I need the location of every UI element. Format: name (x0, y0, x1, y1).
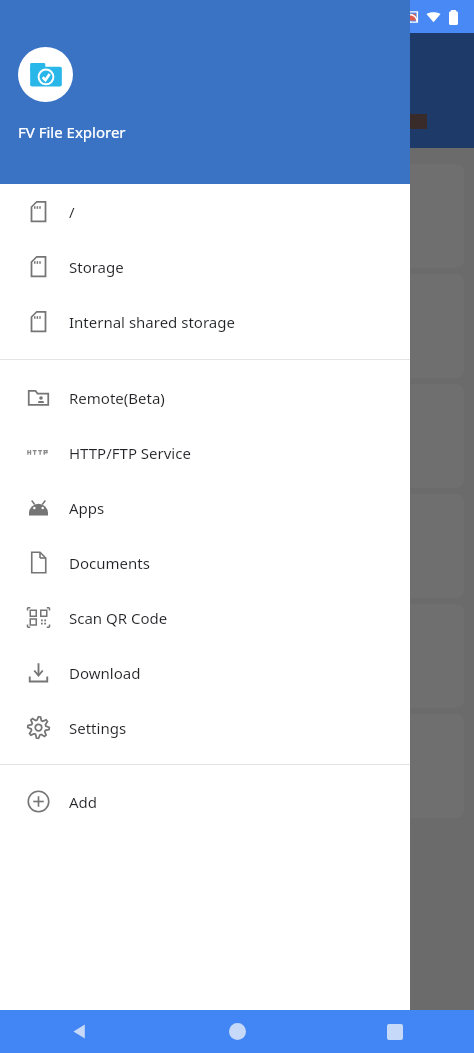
button[interactable]: Settings (0, 700, 410, 755)
staticText: Remote(Beta) (69, 388, 165, 408)
staticText: Storage (69, 257, 124, 277)
staticText: Add (69, 792, 98, 812)
staticText: / (69, 202, 75, 222)
staticText: Scan QR Code (69, 608, 168, 628)
button[interactable]: Remote(Beta) (0, 370, 410, 425)
staticText: Documents (69, 553, 150, 573)
staticText: Internal shared storage (69, 312, 235, 332)
button[interactable]: Storage (0, 239, 410, 294)
staticText: Settings (69, 718, 127, 738)
staticText: FV File Explorer (18, 122, 126, 142)
staticText: Download (69, 663, 141, 683)
button[interactable]: / (0, 184, 410, 239)
button[interactable]: Scan QR Code (0, 590, 410, 645)
button[interactable]: Back (0, 1010, 158, 1053)
staticText: Apps (69, 498, 105, 518)
button[interactable]: Add (0, 774, 410, 829)
button[interactable]: Home (158, 1010, 316, 1053)
button[interactable]: Documents (0, 535, 410, 590)
button[interactable]: Apps (0, 480, 410, 535)
button[interactable]: HTTP/FTP Service (0, 425, 410, 480)
button[interactable]: Download (0, 645, 410, 700)
staticText: HTTP/FTP Service (69, 443, 191, 463)
button[interactable]: Recents (316, 1010, 474, 1053)
button[interactable]: Internal shared storage (0, 294, 410, 349)
